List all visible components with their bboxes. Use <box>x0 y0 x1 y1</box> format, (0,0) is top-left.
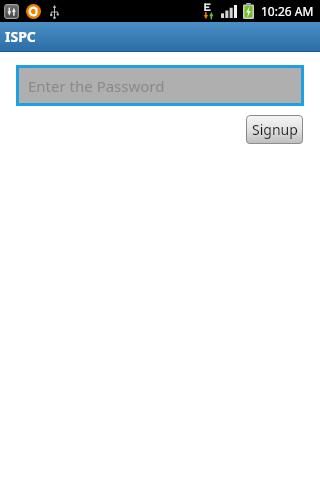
staticText: ISPC <box>5 27 36 46</box>
staticText: 10:26 AM <box>261 3 314 19</box>
staticText: Enter the Password <box>28 76 165 96</box>
button[interactable]: Signup <box>246 115 303 144</box>
staticText: Signup <box>252 120 298 139</box>
button[interactable]: Enter the Password <box>19 68 301 103</box>
